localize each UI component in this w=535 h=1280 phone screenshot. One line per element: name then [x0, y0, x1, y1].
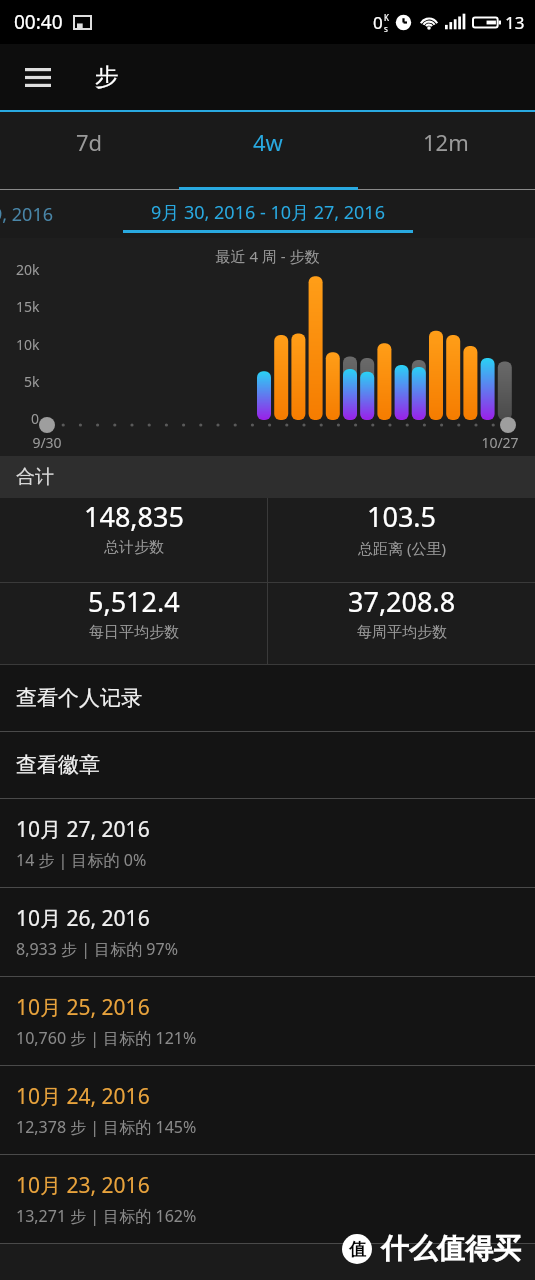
- staticText: 查看徽章: [16, 752, 100, 778]
- staticText: 12,378 步 | 目标的 145%: [16, 1116, 197, 1138]
- button[interactable]: 查看个人记录: [0, 665, 535, 731]
- staticText: 13,271 步 | 目标的 162%: [16, 1205, 197, 1227]
- button[interactable]: 10月 26, 2016: [0, 888, 535, 976]
- button[interactable]: 148,835: [0, 498, 267, 557]
- button[interactable]: 4w: [179, 112, 357, 188]
- staticText: 20k: [16, 260, 40, 279]
- staticText: 总距离 (公里): [358, 538, 446, 558]
- staticText: 13: [505, 11, 525, 34]
- button[interactable]: 9月 30, 2016 - 10月 27, 2016: [151, 200, 385, 225]
- staticText: 0: [373, 11, 383, 34]
- staticText: 14 步 | 目标的 0%: [16, 849, 147, 871]
- staticText: 9/30: [32, 433, 62, 452]
- staticText: 8,933 步 | 目标的 97%: [16, 938, 178, 960]
- button[interactable]: Menu: [14, 53, 62, 101]
- staticText: 5k: [24, 372, 40, 391]
- staticText: 9月 30, 2016 - 10月 27, 2016: [151, 200, 385, 225]
- staticText: 4w: [253, 127, 283, 157]
- button[interactable]: 5,512.4: [0, 583, 267, 642]
- button[interactable]: 7d: [0, 112, 179, 188]
- staticText: 103.5: [367, 498, 437, 535]
- staticText: 每周平均步数: [357, 623, 447, 642]
- staticText: 0: [31, 409, 40, 428]
- staticText: 步: [95, 62, 119, 92]
- staticText: 10月 23, 2016: [16, 1171, 150, 1200]
- staticText: 00:40: [14, 9, 63, 35]
- staticText: 查看个人记录: [16, 685, 142, 711]
- button[interactable]: 10月 24, 2016: [0, 1066, 535, 1154]
- staticText: 7d: [76, 127, 103, 157]
- staticText: 10月 25, 2016: [16, 993, 150, 1022]
- button[interactable]: 12m: [357, 112, 535, 188]
- staticText: 10/27: [481, 433, 519, 452]
- staticText: 合计: [16, 465, 54, 489]
- button[interactable]: 10月 27, 2016: [0, 799, 535, 887]
- staticText: 什么值得买: [381, 1231, 521, 1266]
- staticText: 5,512.4: [88, 583, 180, 620]
- staticText: 148,835: [84, 498, 184, 535]
- button[interactable]: 10月 25, 2016: [0, 977, 535, 1065]
- staticText: 值: [349, 1239, 366, 1260]
- staticText: 10k: [16, 335, 40, 354]
- staticText: 12m: [423, 127, 469, 157]
- staticText: 10月 24, 2016: [16, 1082, 150, 1111]
- staticText: 10月 27, 2016: [16, 815, 150, 844]
- button[interactable]: 10月 23, 2016: [0, 1155, 535, 1243]
- staticText: 10,760 步 | 目标的 121%: [16, 1027, 197, 1049]
- staticText: 最近 4 周 - 步数: [215, 246, 320, 266]
- staticText: 37,208.8: [348, 583, 456, 620]
- staticText: 10月 26, 2016: [16, 904, 150, 933]
- staticText: 15k: [16, 297, 40, 316]
- staticText: 总计步数: [104, 538, 164, 557]
- button[interactable]: 查看徽章: [0, 732, 535, 798]
- button[interactable]: 37,208.8: [268, 583, 535, 642]
- staticText: 9, 2016: [0, 202, 53, 227]
- button[interactable]: 103.5: [268, 498, 535, 558]
- staticText: 每日平均步数: [89, 623, 179, 642]
- staticText: s: [384, 23, 388, 34]
- staticText: K: [384, 12, 389, 23]
